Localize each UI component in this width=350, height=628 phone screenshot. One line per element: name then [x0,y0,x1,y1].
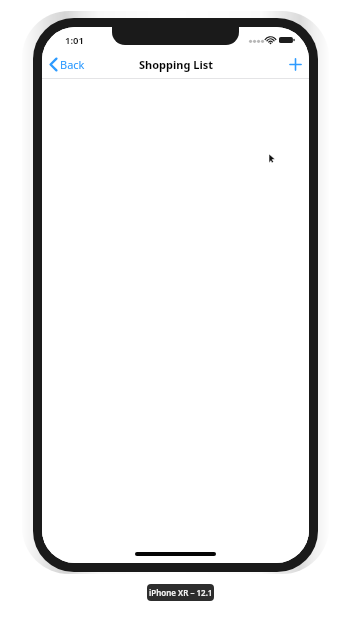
staticText: Back [60,57,85,72]
other: Volume up [39,124,46,162]
staticText: iPhone XR – 12.1 [149,587,213,598]
other: Ring silent switch [39,88,46,108]
other: Volume down [39,170,46,208]
staticText: 1:01 [65,34,84,47]
button[interactable]: Add item [282,51,309,78]
button[interactable]: Back [42,51,93,78]
staticText: Shopping List [139,57,213,72]
other: Power [303,147,311,205]
